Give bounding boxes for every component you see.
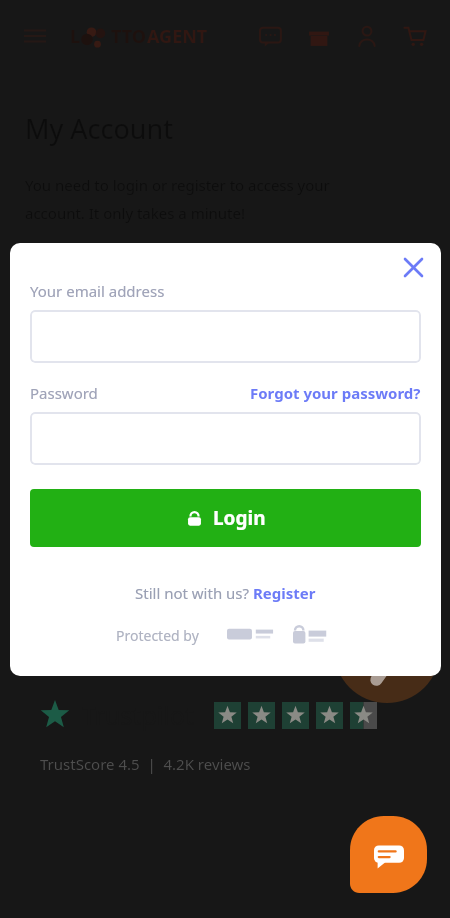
button[interactable]: Cart — [402, 23, 428, 49]
button[interactable] — [30, 310, 421, 363]
button[interactable]: Forgot your password? — [250, 383, 421, 403]
button[interactable]: Close — [395, 249, 431, 285]
staticText: My Account — [25, 110, 173, 147]
button[interactable]: Chat — [350, 816, 427, 893]
button[interactable]: Gifts — [306, 23, 332, 49]
staticText: Password — [30, 383, 98, 403]
button[interactable]: Login — [30, 489, 421, 547]
staticText: Your email address — [30, 281, 165, 301]
staticText: Still not with us? — [135, 583, 253, 603]
button[interactable]: Account — [354, 23, 380, 49]
staticText: Protected by — [116, 626, 199, 645]
button[interactable] — [0, 0, 450, 918]
staticText: AGENT — [147, 24, 208, 49]
staticText: TTO — [111, 24, 147, 49]
staticText: Register — [253, 583, 316, 603]
button[interactable]: Register — [253, 583, 316, 603]
staticText: Login — [213, 505, 266, 531]
button[interactable]: Messages — [258, 23, 284, 49]
button[interactable] — [30, 412, 421, 465]
button[interactable]: Menu — [22, 23, 48, 49]
staticText: Forgot your password? — [250, 383, 421, 403]
staticText: L — [70, 24, 81, 49]
staticText: TrustScore 4.5 | 4.2K reviews — [40, 754, 251, 774]
